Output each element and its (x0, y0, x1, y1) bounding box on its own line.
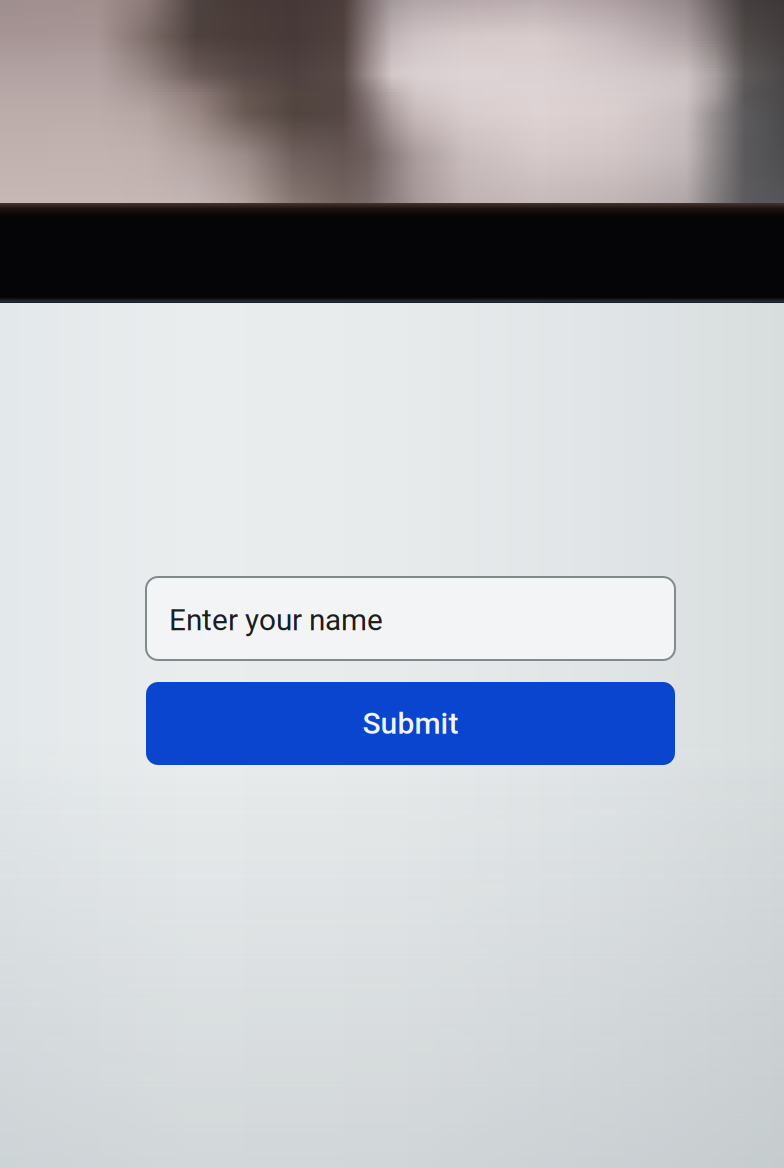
button[interactable]: Enter your name (146, 577, 675, 660)
staticText: Submit (362, 706, 458, 741)
button[interactable]: Submit (146, 682, 675, 765)
staticText: Enter your name (169, 603, 383, 637)
